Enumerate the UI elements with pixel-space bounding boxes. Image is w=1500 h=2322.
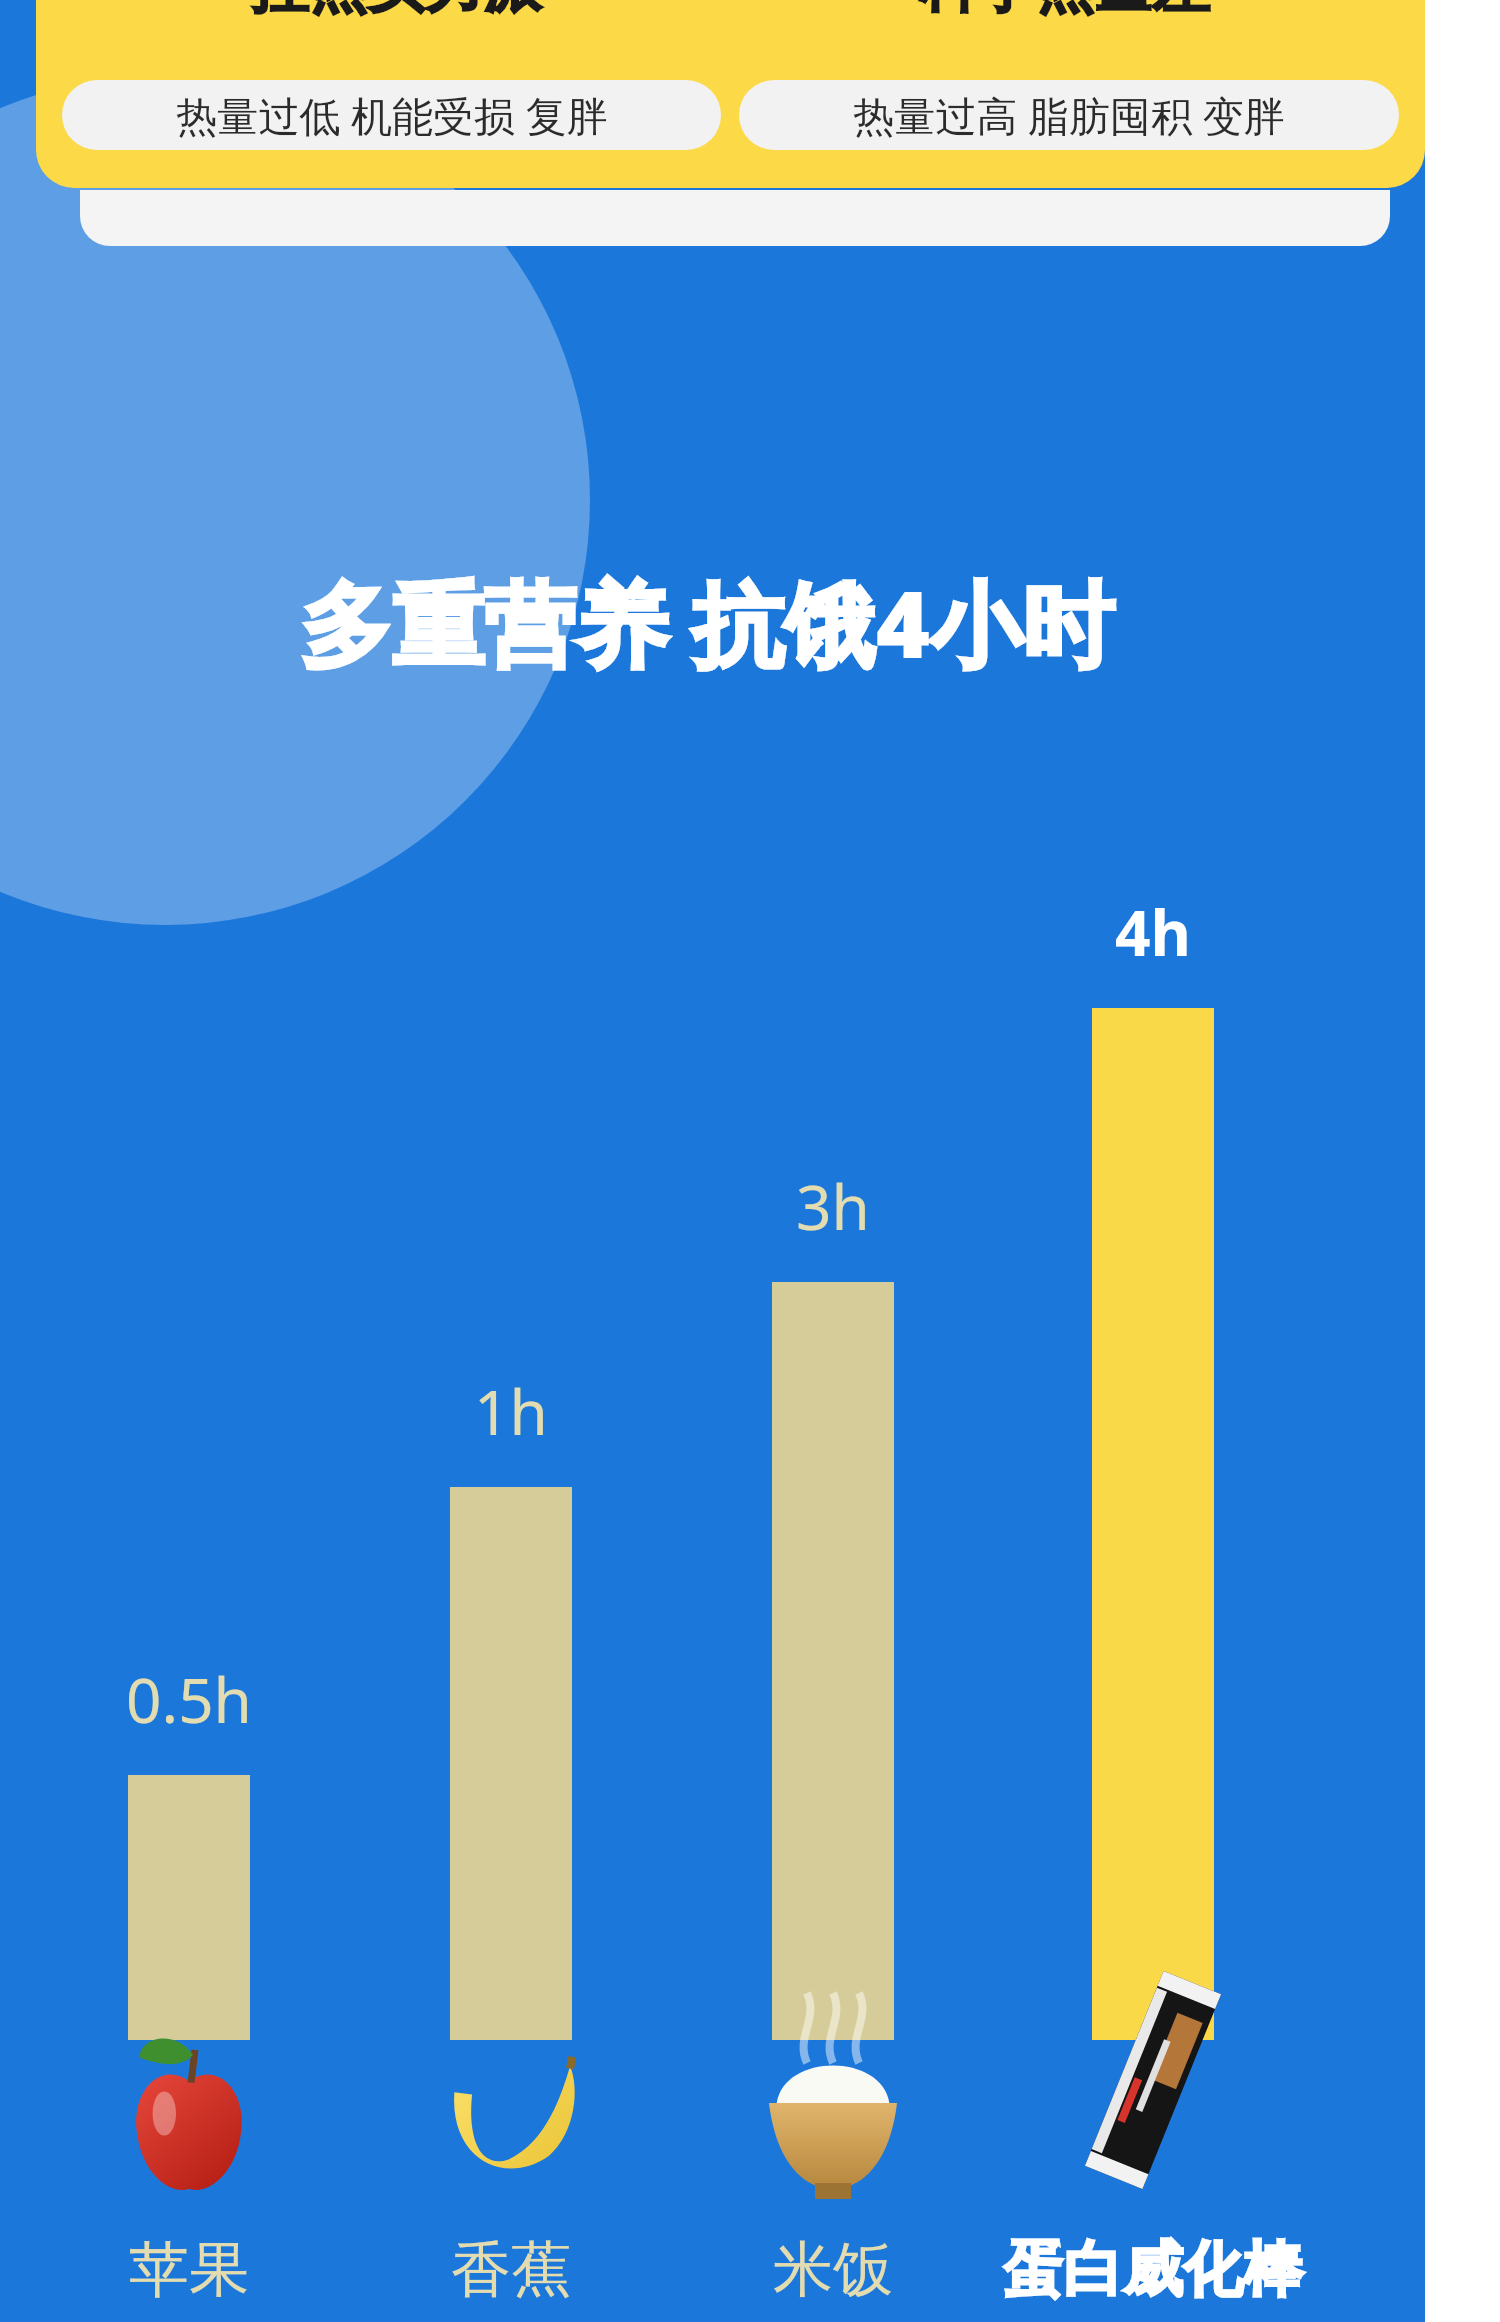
staticText: 科学热量差 — [920, 0, 1210, 23]
staticText: 控热实力派 — [251, 0, 541, 23]
button[interactable]: 米饭 — [642, 2232, 1024, 2308]
button[interactable]: 苹果 — [0, 2232, 380, 2308]
staticText: 米饭 — [773, 2232, 893, 2308]
staticText: 热量过高 脂肪囤积 变胖 — [853, 87, 1285, 143]
staticText: 香蕉 — [451, 2232, 571, 2308]
staticText: 4h — [1115, 890, 1191, 974]
staticText: 1h — [474, 1369, 548, 1453]
staticText: 3h — [796, 1164, 870, 1248]
staticText: 蛋白威化棒 — [1003, 2232, 1303, 2308]
button[interactable]: 蛋白威化棒 — [962, 2232, 1344, 2308]
staticText: 0.5h — [126, 1657, 252, 1741]
button[interactable]: 热量过高 脂肪囤积 变胖 — [739, 80, 1399, 150]
button[interactable]: 热量过低 机能受损 复胖 — [62, 80, 721, 150]
staticText: 热量过低 机能受损 复胖 — [176, 87, 608, 143]
button[interactable]: 香蕉 — [320, 2232, 702, 2308]
staticText: 多重营养 抗饿4小时 — [300, 560, 1114, 686]
staticText: 苹果 — [129, 2232, 249, 2308]
